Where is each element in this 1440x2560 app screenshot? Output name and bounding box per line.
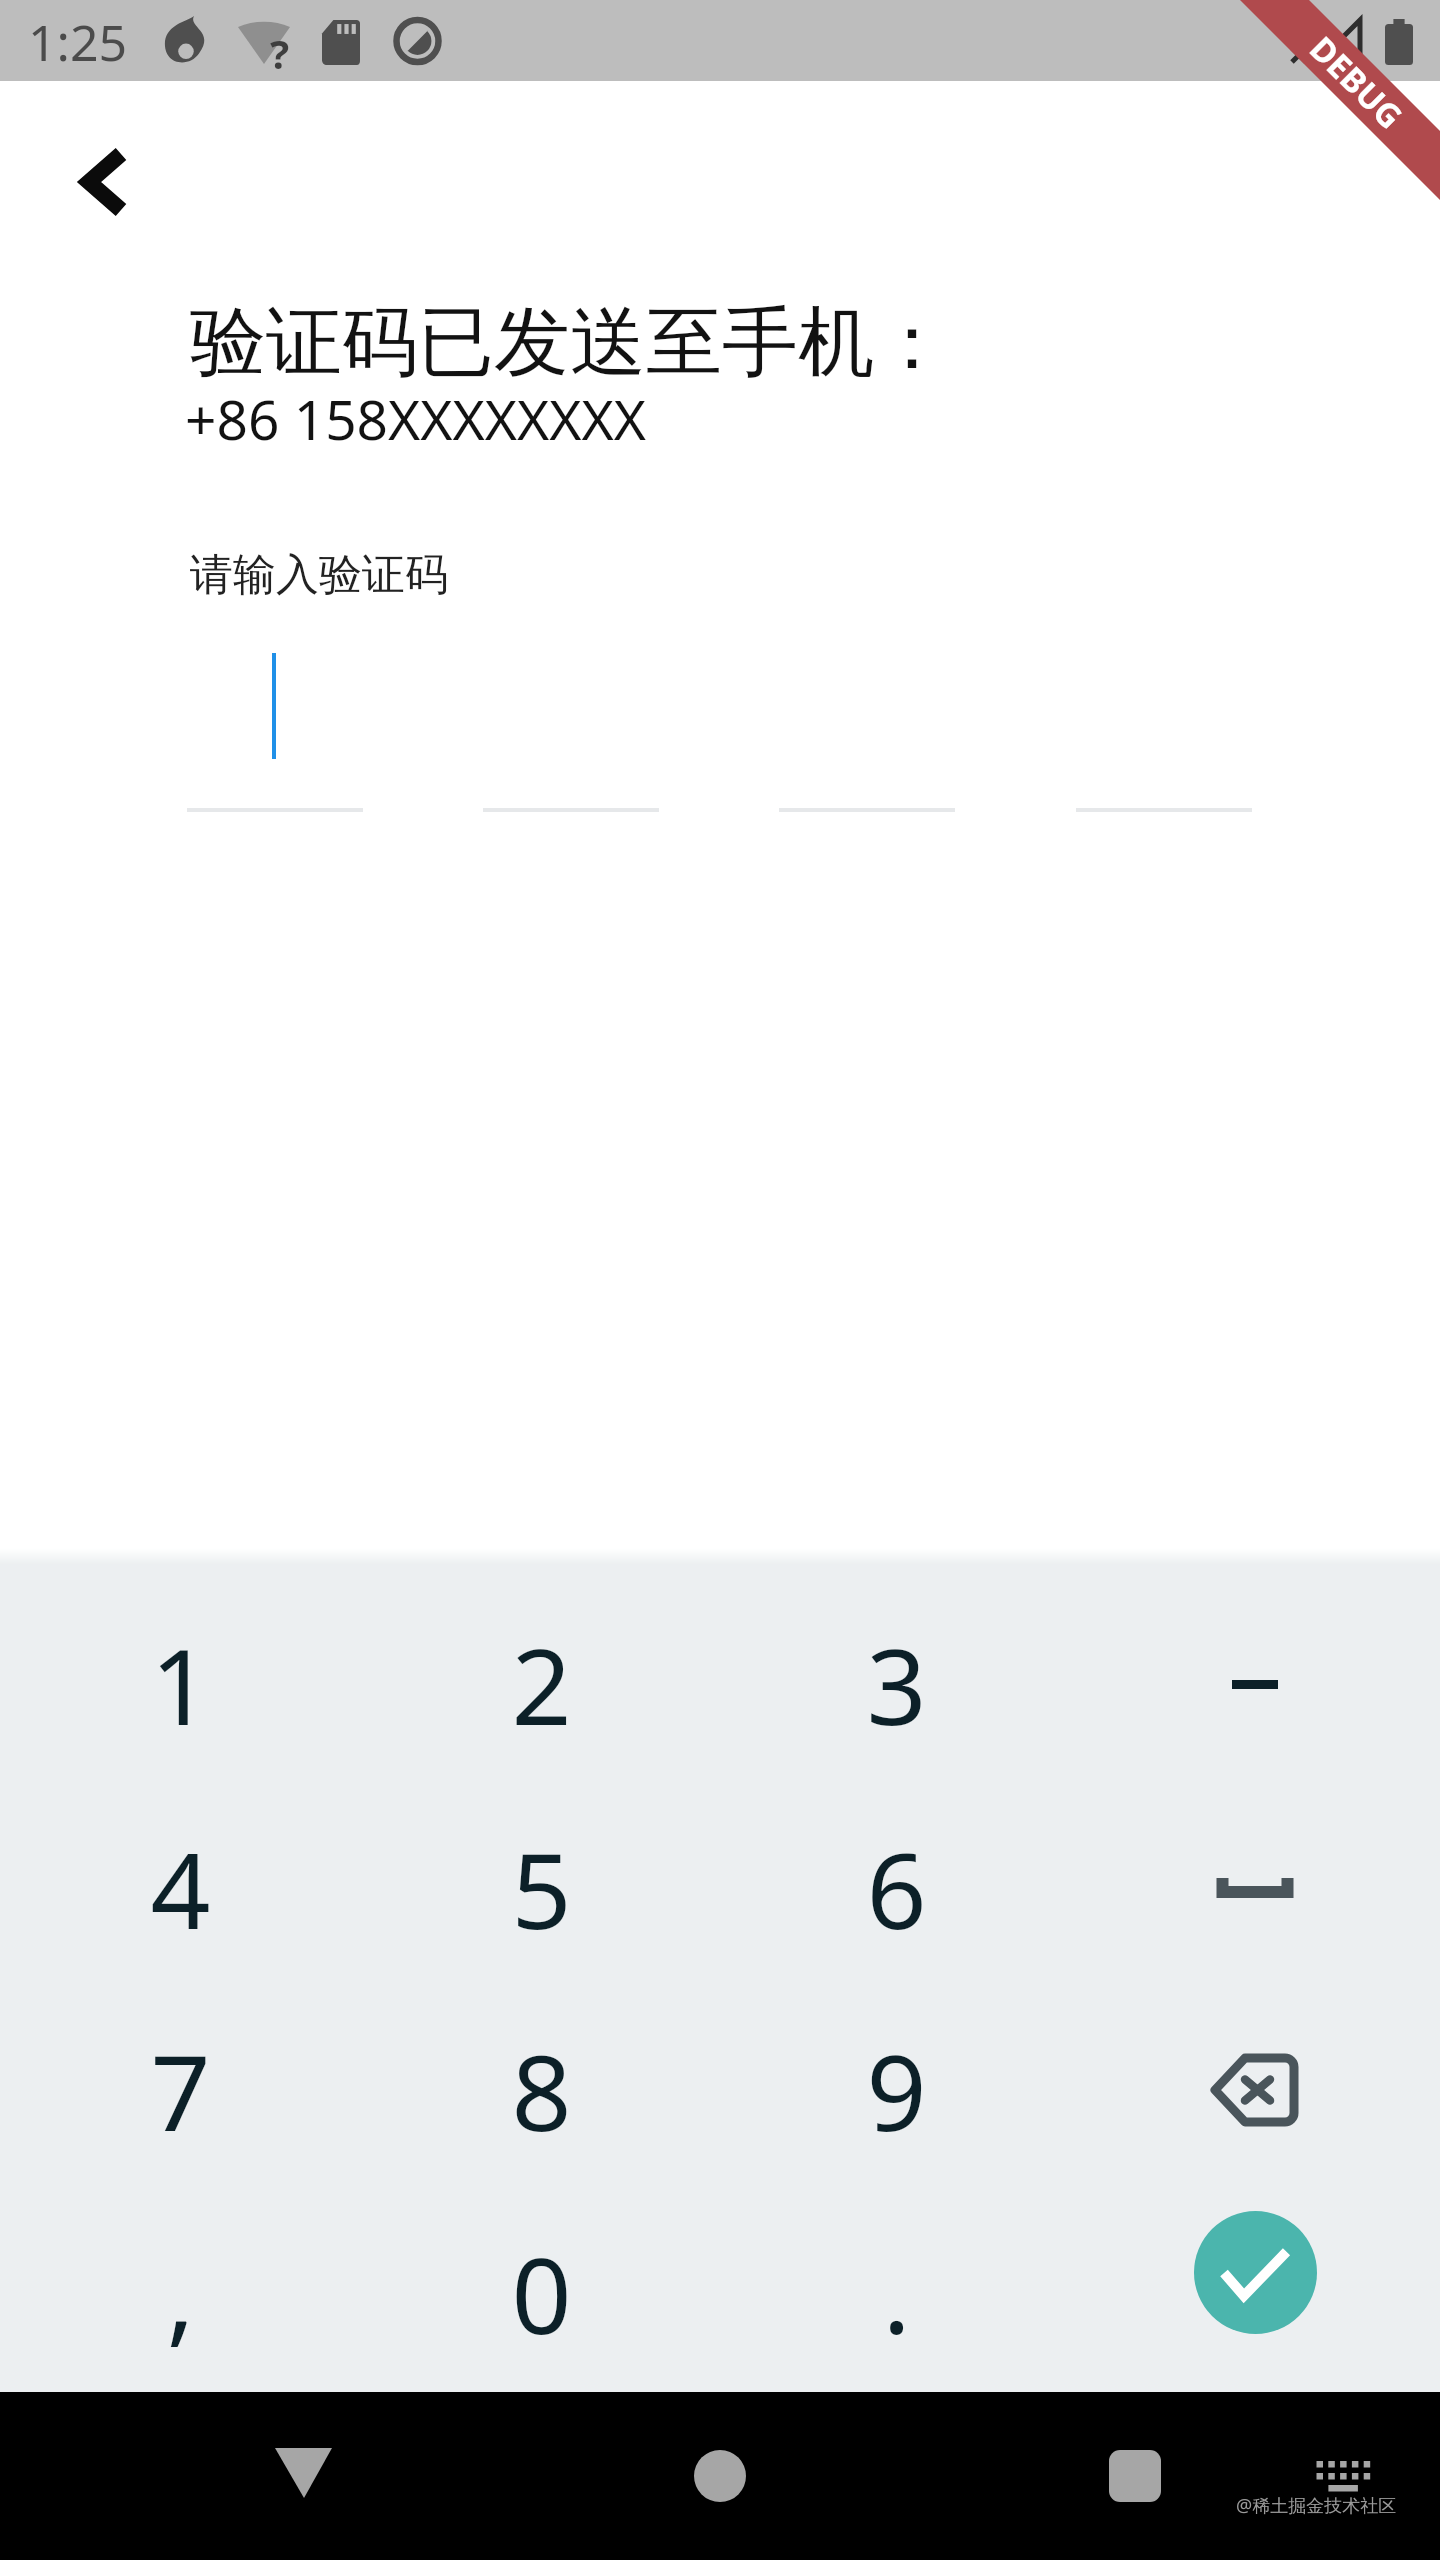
staticText: 1:25 [28,8,128,76]
button[interactable]: Confirm [1194,2211,1317,2334]
button[interactable]: Recents [1075,2417,1195,2537]
staticText: 8 [511,2019,572,2162]
staticText: , [166,2222,195,2365]
staticText: 1 [150,1613,211,1756]
staticText: 请输入验证码 [190,548,448,602]
staticText: . [882,2222,911,2365]
button[interactable]: 0 [361,2192,721,2394]
button[interactable]: 4 [0,1787,360,1989]
staticText: @稀土掘金技术社区 [1236,2493,1397,2518]
staticText: 7 [150,2019,211,2162]
staticText: 6 [866,1817,927,1960]
staticText: 0 [511,2222,572,2365]
button[interactable]: 3 [716,1583,1076,1785]
button[interactable]: 1 [0,1583,360,1785]
staticText: 4 [150,1817,211,1960]
staticText: ? [270,26,290,80]
staticText: 3 [866,1613,927,1756]
button[interactable]: 7 [0,1989,360,2191]
button[interactable]: 8 [361,1989,721,2191]
button[interactable]: 2 [361,1583,721,1785]
staticText: 9 [866,2019,927,2162]
button[interactable]: , [0,2192,360,2394]
staticText: DEBUG [1300,26,1413,138]
staticText: 5 [511,1817,572,1960]
button[interactable]: Home [660,2417,780,2537]
button[interactable]: 5 [361,1787,721,1989]
staticText: 2 [511,1613,572,1756]
button[interactable]: . [716,2192,1076,2394]
button[interactable]: 9 [716,1989,1076,2191]
button[interactable]: 6 [716,1787,1076,1989]
button[interactable]: Back [244,2417,364,2537]
button[interactable]: Switch keyboard [1306,2446,1382,2494]
button[interactable]: Back [36,108,184,256]
button[interactable]: Space [1075,1787,1435,1989]
staticText: +86 158XXXXXXXX [185,381,646,456]
staticText: 验证码已发送至手机： [190,295,950,391]
button[interactable]: Minus [1075,1583,1435,1785]
button[interactable]: Backspace [1075,1989,1435,2191]
